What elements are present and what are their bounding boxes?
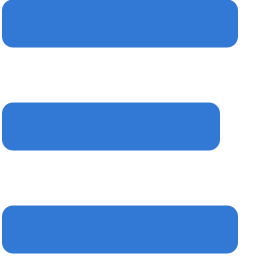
button[interactable]: Menu [2, 0, 238, 253]
